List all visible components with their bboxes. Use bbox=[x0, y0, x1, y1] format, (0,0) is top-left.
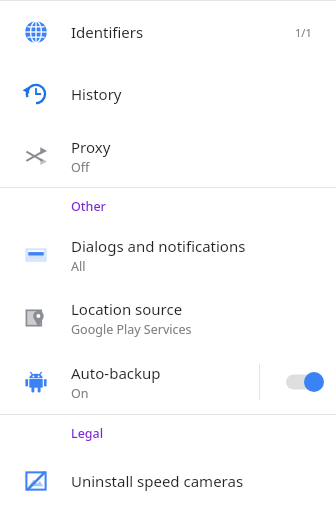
staticText: Other bbox=[71, 198, 106, 215]
button[interactable]: Auto-backup bbox=[0, 350, 336, 414]
staticText: Uninstall speed cameras bbox=[71, 471, 244, 491]
staticText: Legal bbox=[71, 425, 104, 442]
button[interactable]: Auto-backup toggle bbox=[280, 367, 328, 397]
staticText: History bbox=[71, 84, 122, 104]
staticText: Identifiers bbox=[71, 22, 144, 42]
button[interactable]: Uninstall speed cameras bbox=[0, 451, 336, 511]
staticText: All bbox=[71, 258, 86, 275]
staticText: Proxy bbox=[71, 137, 111, 157]
staticText: Google Play Services bbox=[71, 321, 192, 338]
button[interactable]: History bbox=[0, 63, 336, 125]
staticText: Dialogs and notifications bbox=[71, 236, 246, 256]
staticText: 1/1 bbox=[295, 25, 312, 40]
staticText: Auto-backup bbox=[71, 363, 161, 383]
button[interactable]: Identifiers bbox=[0, 1, 336, 63]
button[interactable]: Proxy bbox=[0, 125, 336, 187]
staticText: Location source bbox=[71, 299, 183, 319]
button[interactable]: Location source bbox=[0, 286, 336, 350]
staticText: Off bbox=[71, 159, 90, 176]
button[interactable]: Dialogs and notifications bbox=[0, 224, 336, 286]
staticText: On bbox=[71, 385, 89, 402]
